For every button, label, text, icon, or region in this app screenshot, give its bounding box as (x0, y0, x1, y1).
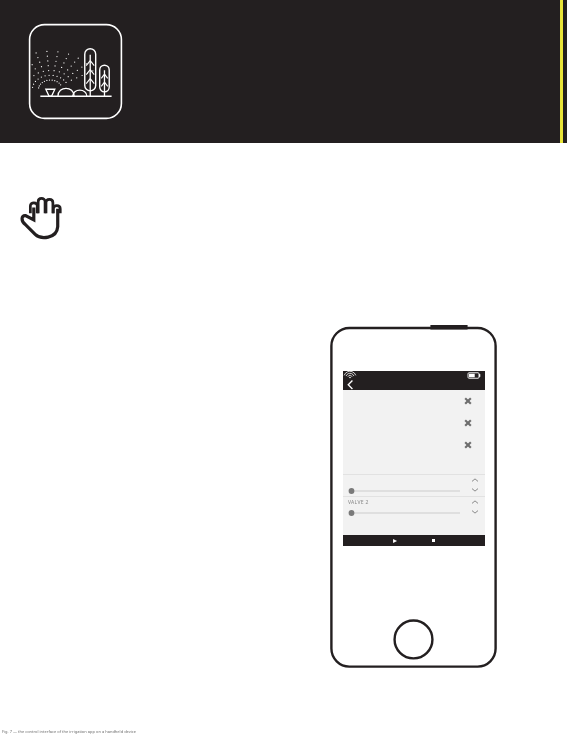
button[interactable]: Back (344, 380, 356, 390)
button[interactable]: Remove (463, 396, 473, 406)
button[interactable]: Manual control (20, 193, 66, 241)
button[interactable]: Irrigation app icon (28, 23, 123, 120)
button[interactable]: Expand (343, 474, 485, 496)
staticText: VALVE 2 (348, 499, 369, 506)
button[interactable]: Remove (343, 412, 485, 434)
button[interactable]: Remove (343, 434, 485, 456)
button[interactable]: Remove (463, 440, 473, 450)
button[interactable]: Expand (469, 476, 481, 494)
button[interactable]: Remove (463, 418, 473, 428)
button[interactable]: VALVE 2 (343, 496, 485, 518)
button[interactable]: Remove (343, 390, 485, 412)
button[interactable]: Back (387, 535, 403, 546)
staticText: Fig. 7 — the control interface of the ir… (2, 729, 137, 734)
button[interactable]: Expand (469, 498, 481, 516)
button[interactable]: Recents (425, 535, 441, 546)
